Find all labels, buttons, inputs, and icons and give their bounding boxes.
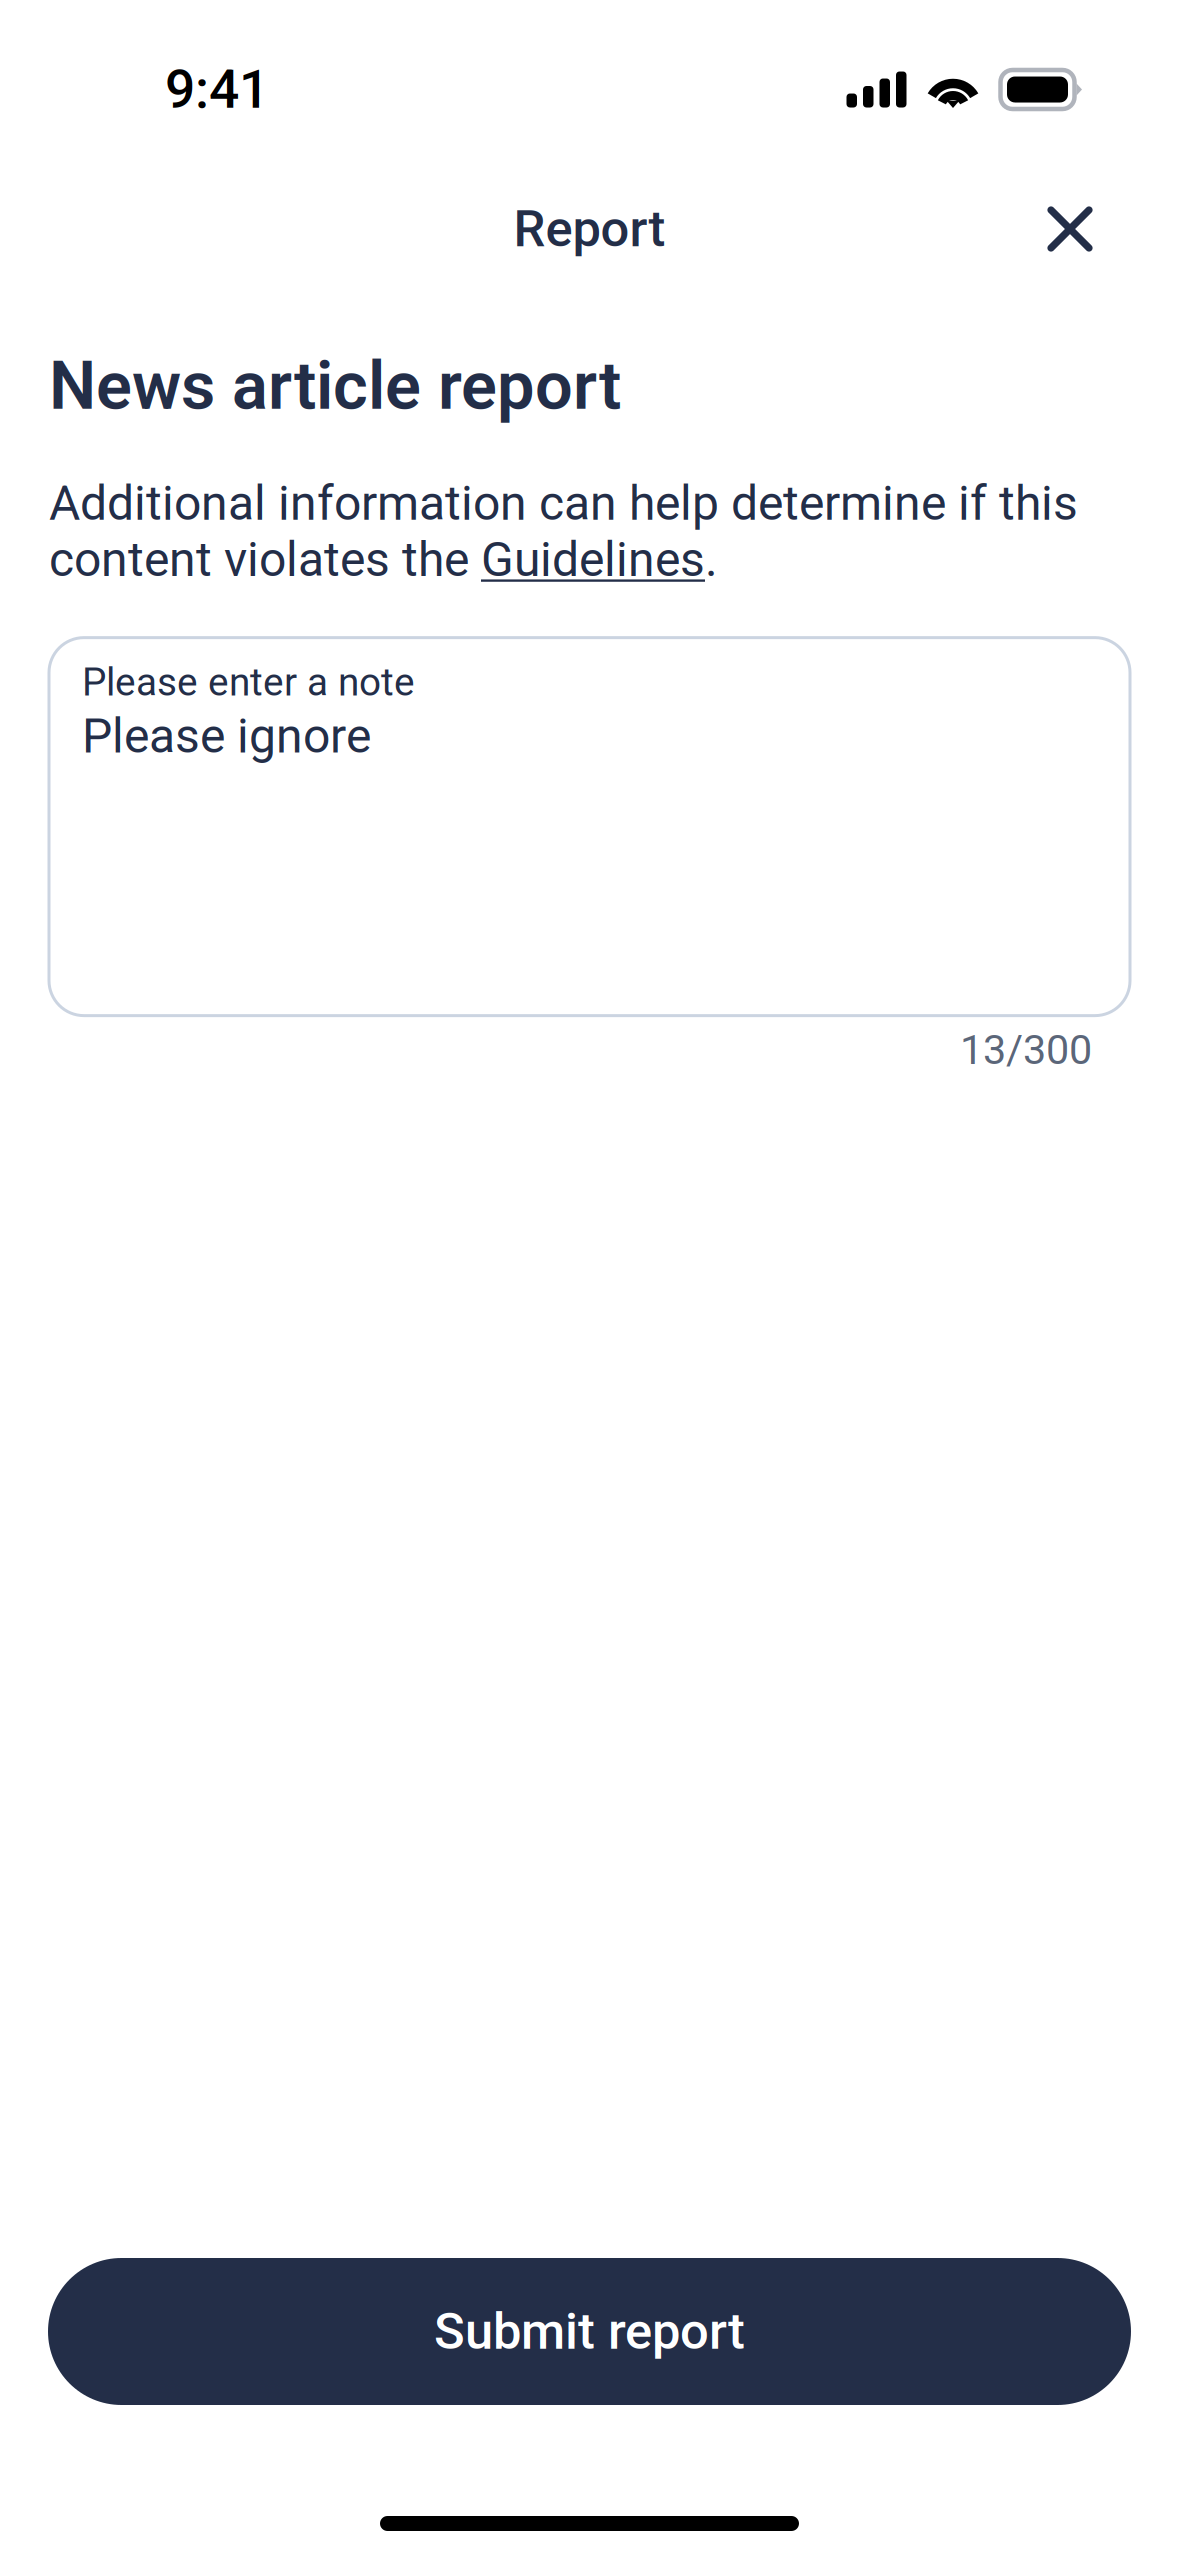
staticText: Please ignore [82, 708, 371, 764]
staticText: Submit report [434, 2302, 745, 2361]
staticText: Report [513, 199, 665, 259]
button[interactable]: Submit report [48, 2258, 1131, 2405]
staticText: 9:41 [165, 58, 269, 121]
staticText: Additional information can help determin… [49, 475, 1078, 588]
staticText: Please enter a note [82, 660, 415, 705]
button[interactable]: Close [1022, 181, 1118, 277]
staticText: 13/300 [960, 1026, 1092, 1074]
staticText: News article report [49, 347, 621, 425]
